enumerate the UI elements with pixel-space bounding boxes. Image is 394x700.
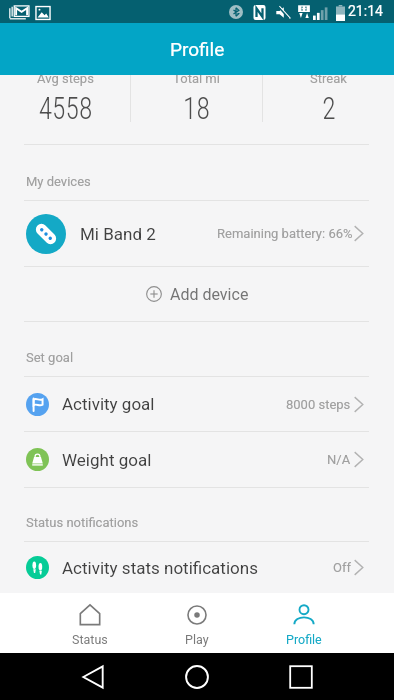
staticText: 2: [322, 90, 336, 126]
button[interactable]: Status: [37, 593, 143, 653]
button[interactable]: Back: [41, 653, 145, 700]
button[interactable]: Weight goal: [0, 432, 394, 487]
button[interactable]: Activity stats notifications: [0, 542, 394, 593]
staticText: Status: [72, 632, 108, 647]
staticText: Mi Band 2: [80, 224, 156, 244]
staticText: N/A: [327, 452, 351, 467]
staticText: Activity goal: [62, 394, 155, 414]
button[interactable]: Profile: [250, 593, 357, 653]
staticText: 21:14: [348, 3, 383, 19]
staticText: Play: [185, 632, 209, 647]
staticText: Add device: [170, 285, 249, 304]
staticText: Off: [333, 560, 351, 575]
staticText: My devices: [26, 174, 91, 189]
staticText: Total mi: [173, 75, 220, 86]
button[interactable]: Mi Band 2: [0, 201, 394, 266]
staticText: Avg steps: [37, 75, 94, 86]
button[interactable]: Home: [145, 653, 249, 700]
button[interactable]: Recents: [249, 653, 353, 700]
button[interactable]: Add device: [0, 267, 394, 321]
staticText: Streak: [310, 75, 347, 86]
staticText: 8000 steps: [286, 397, 351, 412]
staticText: Profile: [170, 38, 225, 60]
staticText: Status notifications: [26, 515, 139, 530]
button[interactable]: Activity goal: [0, 377, 394, 431]
button[interactable]: Play: [143, 593, 250, 653]
staticText: Weight goal: [62, 450, 152, 470]
staticText: Profile: [286, 632, 322, 647]
staticText: Remaining battery: 66%: [217, 226, 353, 241]
staticText: 4558: [38, 90, 93, 126]
staticText: 18: [183, 90, 210, 126]
staticText: Activity stats notifications: [62, 558, 258, 578]
staticText: Set goal: [26, 350, 74, 365]
